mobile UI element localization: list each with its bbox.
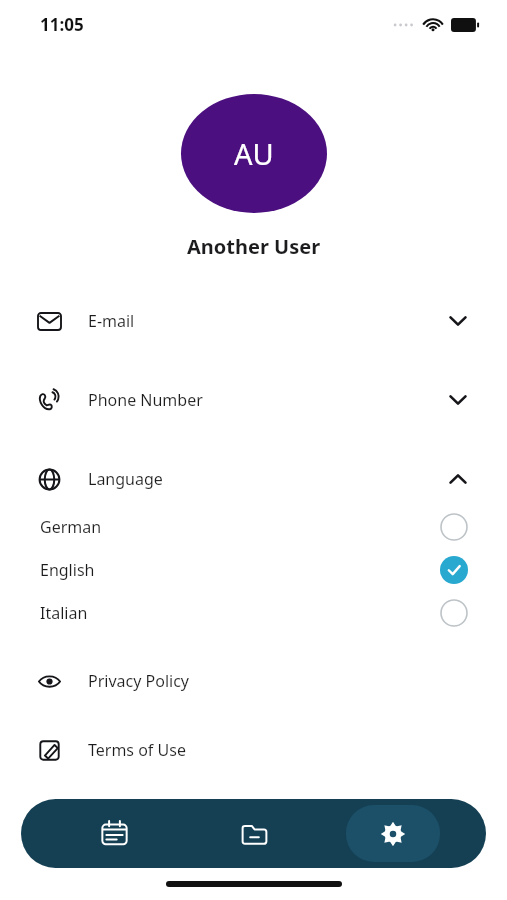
button[interactable]: Settings [346,805,440,862]
staticText: Phone Number [88,389,203,411]
staticText: Language [88,468,163,490]
button[interactable]: Privacy Policy [0,664,507,698]
button[interactable]: Italian [0,598,507,628]
button[interactable]: Language [0,462,507,496]
button[interactable]: Phone Number [0,383,507,417]
staticText: English [40,559,95,581]
staticText: Terms of Use [88,739,186,761]
button[interactable]: Files [207,805,301,862]
staticText: AU [234,134,274,173]
staticText: Italian [40,602,88,624]
button[interactable]: German [0,512,507,542]
staticText: E-mail [88,310,135,332]
staticText: Privacy Policy [88,670,189,692]
button[interactable]: Log Out [0,800,507,834]
button[interactable]: Agenda [67,805,161,862]
staticText: Log Out [88,806,149,828]
staticText: Another User [187,233,321,260]
button[interactable]: E-mail [0,304,507,338]
button[interactable]: English [0,555,507,585]
staticText: 11:05 [40,13,84,36]
staticText: German [40,516,102,538]
button[interactable]: Terms of Use [0,733,507,767]
